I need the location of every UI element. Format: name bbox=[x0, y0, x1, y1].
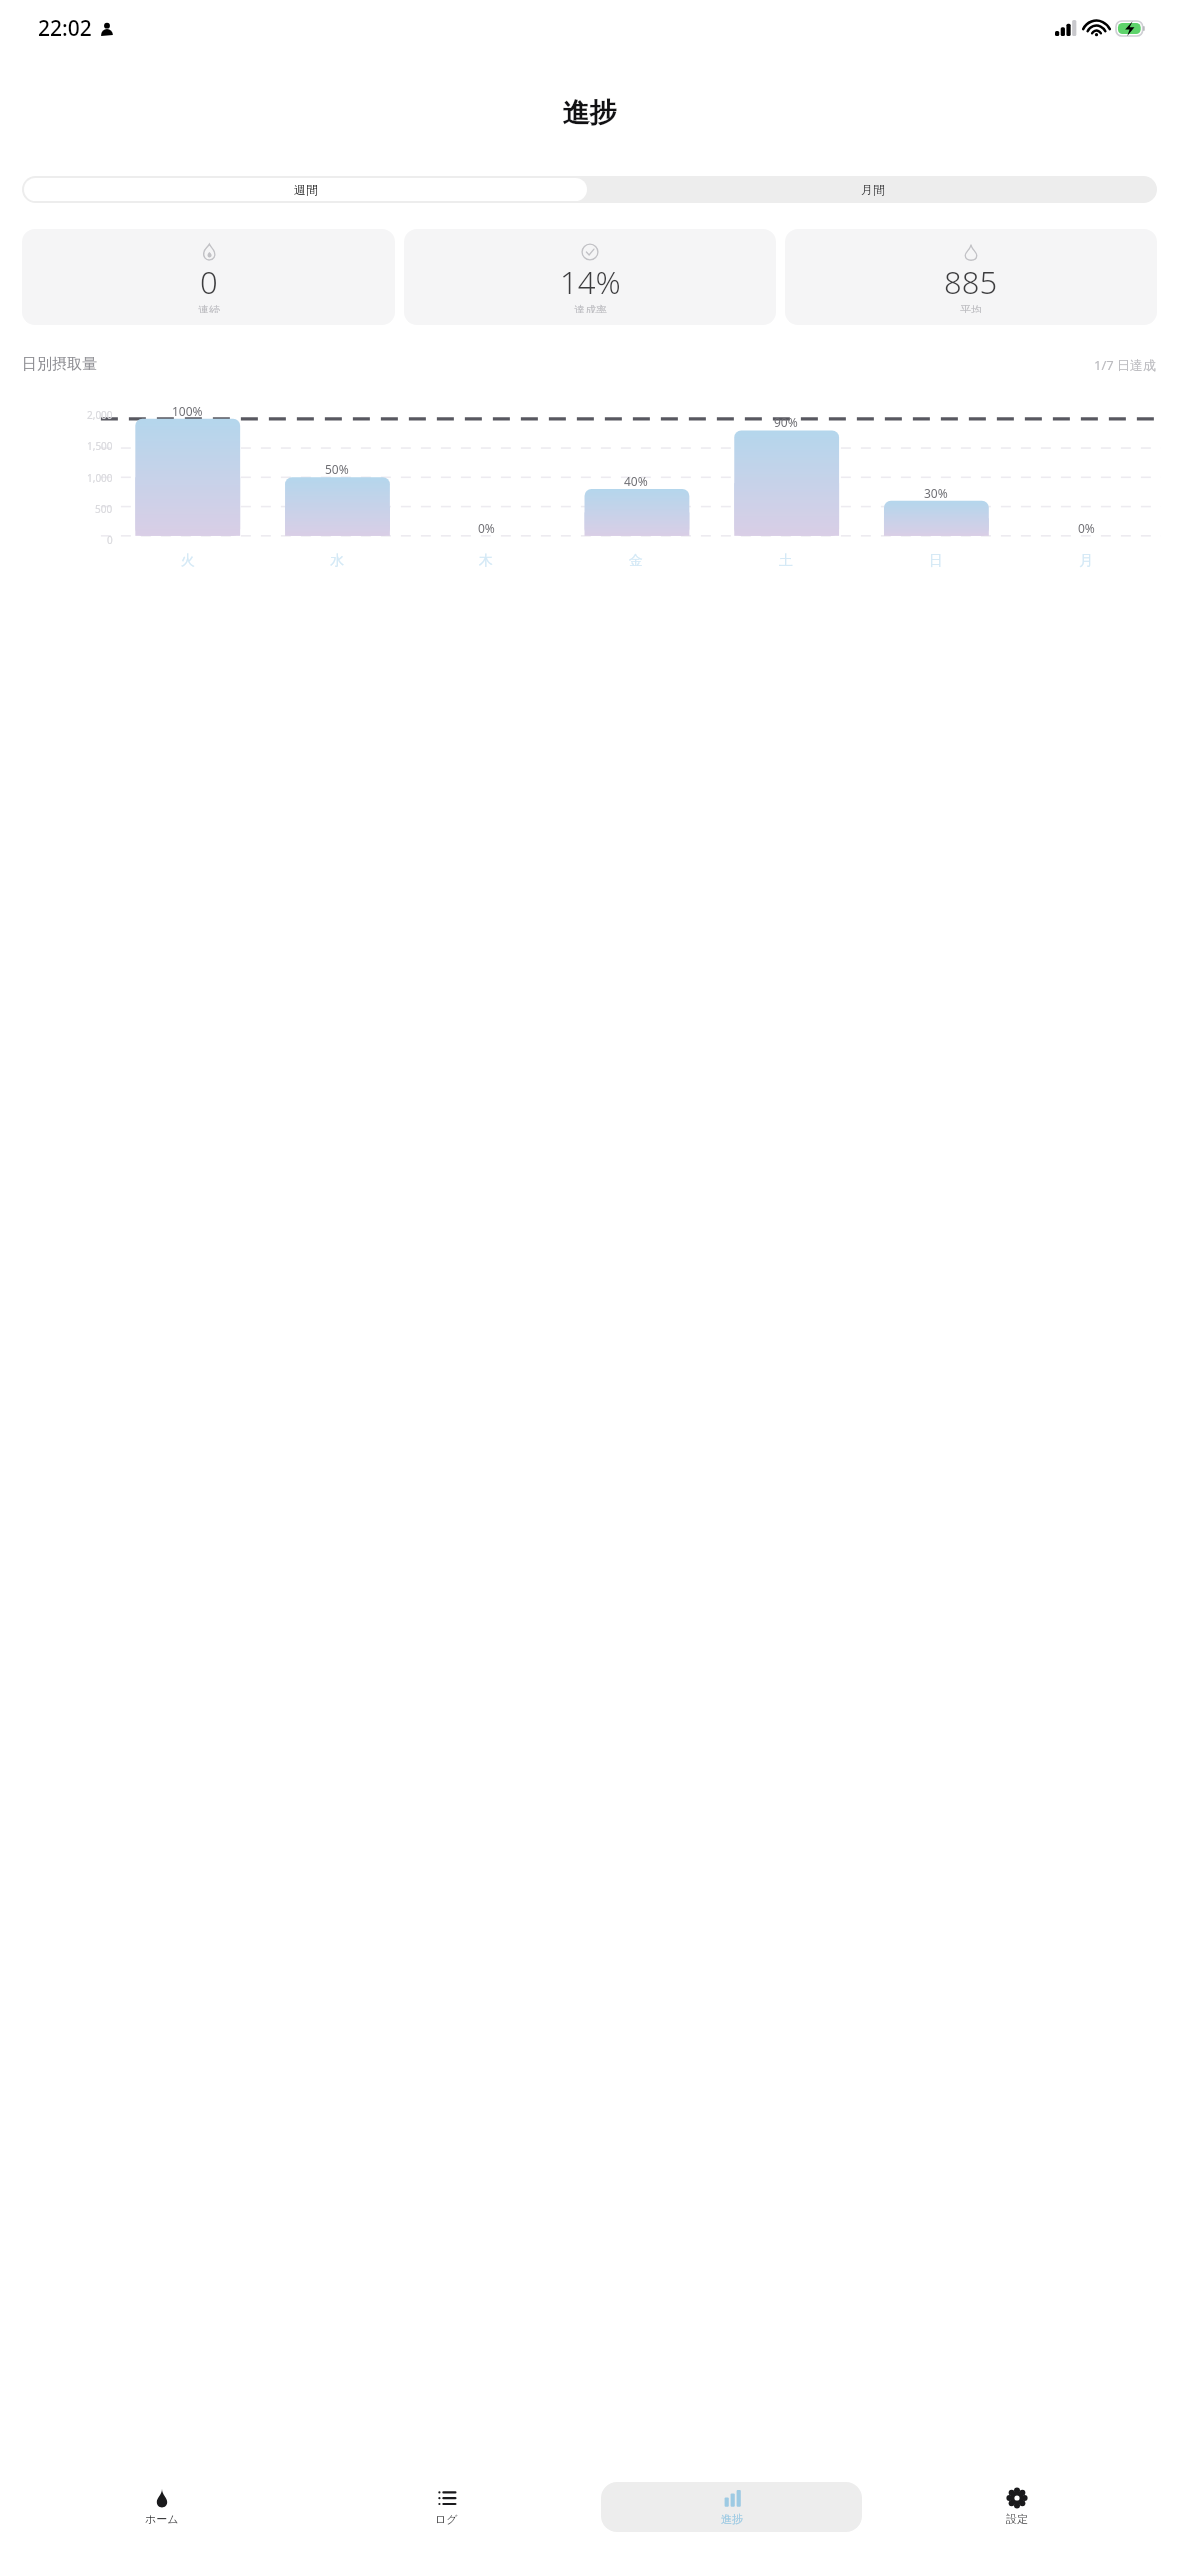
staticText: 金 bbox=[629, 552, 643, 570]
button[interactable]: ログ bbox=[316, 2482, 577, 2532]
button[interactable]: 885 bbox=[785, 229, 1157, 325]
staticText: 1,000 bbox=[87, 471, 113, 485]
button[interactable]: 週間 bbox=[24, 178, 587, 201]
staticText: 0% bbox=[1078, 520, 1095, 536]
staticText: 土 bbox=[779, 552, 793, 570]
staticText: 500 bbox=[95, 502, 113, 516]
staticText: 40% bbox=[624, 473, 648, 489]
staticText: 月間 bbox=[861, 182, 885, 197]
staticText: 30% bbox=[924, 485, 948, 501]
staticText: 連続 bbox=[198, 303, 220, 313]
staticText: 1/7 日達成 bbox=[1094, 356, 1157, 374]
staticText: 50% bbox=[325, 461, 349, 477]
button[interactable]: ホーム bbox=[32, 2482, 292, 2532]
staticText: 日別摂取量 bbox=[22, 355, 97, 374]
staticText: 週間 bbox=[294, 182, 318, 197]
staticText: 進捗 bbox=[0, 96, 1179, 130]
staticText: 0 bbox=[200, 261, 218, 303]
staticText: 水 bbox=[330, 552, 344, 570]
staticText: 日 bbox=[929, 552, 943, 570]
staticText: ログ bbox=[435, 2512, 458, 2526]
staticText: 1,500 bbox=[87, 439, 113, 453]
staticText: 設定 bbox=[1006, 2512, 1028, 2526]
staticText: 90% bbox=[774, 414, 798, 430]
staticText: 平均 bbox=[960, 303, 982, 313]
button[interactable]: 設定 bbox=[886, 2482, 1147, 2532]
staticText: 0% bbox=[478, 520, 495, 536]
staticText: 進捗 bbox=[721, 2512, 743, 2526]
staticText: 14% bbox=[560, 261, 621, 303]
staticText: 木 bbox=[479, 552, 493, 570]
staticText: 885 bbox=[944, 261, 998, 303]
staticText: 100% bbox=[172, 403, 203, 419]
button[interactable]: 月間 bbox=[589, 176, 1157, 203]
staticText: 2,000 bbox=[87, 408, 113, 422]
staticText: 22:02 bbox=[38, 14, 92, 43]
button[interactable]: 0 bbox=[22, 229, 395, 325]
staticText: 月 bbox=[1079, 552, 1093, 570]
staticText: 達成率 bbox=[574, 303, 607, 313]
staticText: 0 bbox=[107, 533, 113, 547]
button[interactable]: 14% bbox=[404, 229, 776, 325]
staticText: ホーム bbox=[145, 2512, 179, 2526]
staticText: 火 bbox=[181, 552, 195, 570]
button[interactable]: 進捗 bbox=[601, 2482, 862, 2532]
